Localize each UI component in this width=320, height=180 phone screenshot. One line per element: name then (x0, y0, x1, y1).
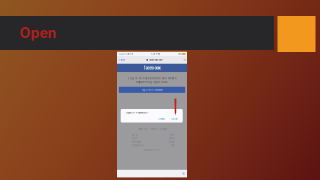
staticText: Open (19, 24, 56, 41)
staticText: Groups (168, 141, 174, 143)
staticText: Facebook Lite (131, 144, 143, 147)
button[interactable]: Open (171, 117, 177, 120)
staticText: Cancel (158, 117, 165, 120)
staticText: Cancel (118, 58, 125, 61)
staticText: ⟳ (184, 58, 186, 62)
staticText: Places (169, 134, 174, 136)
button[interactable]: Reload (184, 58, 186, 62)
button[interactable]: Log In with Facebook (117, 87, 187, 93)
staticText: 1:21 PM (151, 52, 160, 55)
staticText: happening right now. (136, 80, 168, 83)
staticText: Log In with Facebook (141, 88, 162, 91)
staticText: English (US) Español Français (137, 128, 166, 130)
staticText: facebook (143, 66, 160, 70)
staticText: Jobs (170, 144, 174, 147)
staticText: Sign Up (131, 134, 137, 136)
staticText: Games (168, 137, 174, 140)
staticText: 73% (177, 52, 181, 55)
staticText: Log In (131, 137, 137, 140)
staticText: Log in to Facebook to see what's (128, 77, 176, 80)
staticText: Facebook © 2017 (144, 149, 160, 151)
button[interactable]: Cancel (118, 58, 125, 61)
staticText: Open in “Password”? (126, 111, 148, 114)
staticText: Messenger (131, 141, 141, 143)
staticText: ••••○ Carrier (118, 52, 133, 55)
button[interactable]: Cancel (158, 117, 165, 120)
staticText: facebook.com (149, 58, 163, 61)
staticText: Open (171, 117, 177, 120)
